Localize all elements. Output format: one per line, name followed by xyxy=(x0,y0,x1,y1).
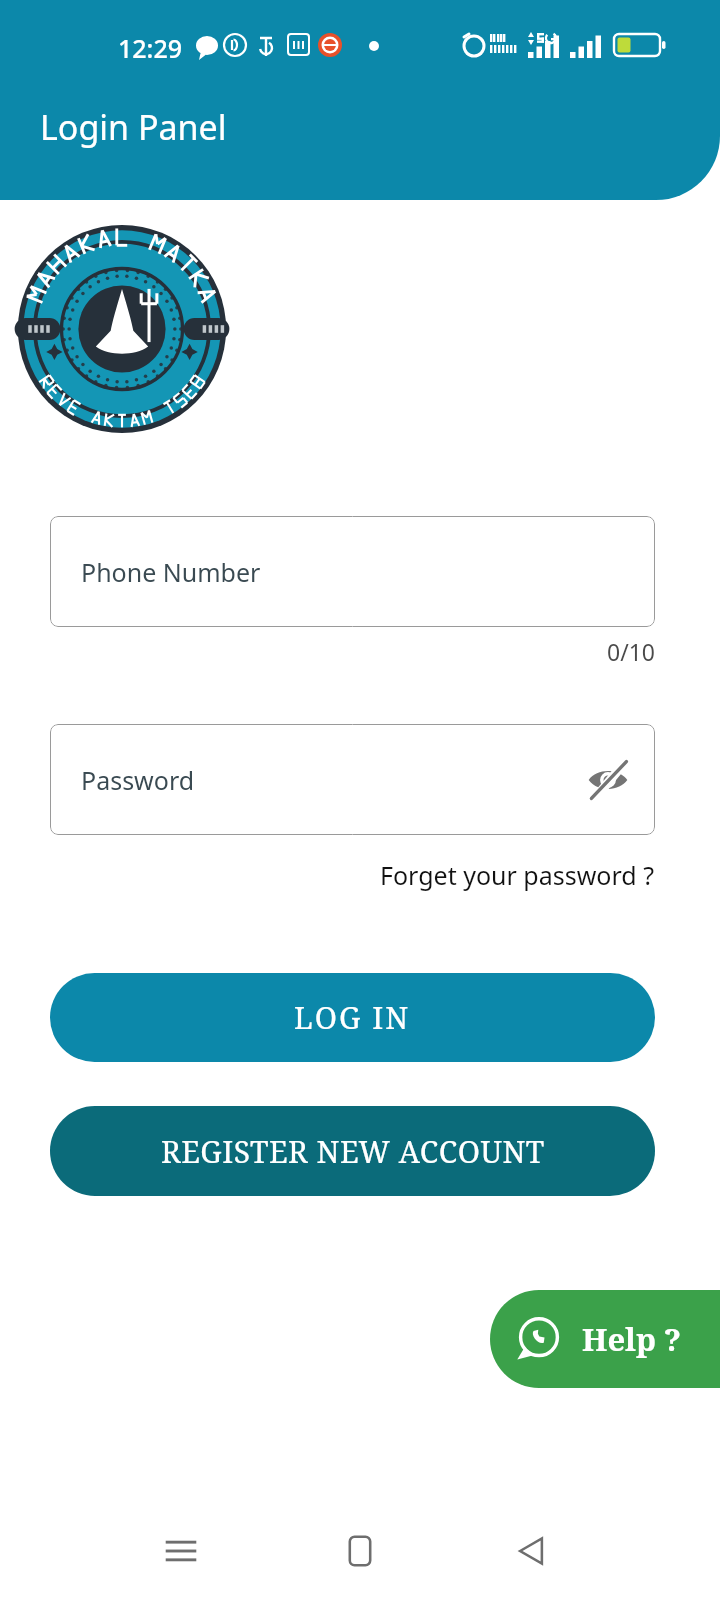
button[interactable]: LOG IN xyxy=(50,973,655,1062)
staticText: Forget your password ? xyxy=(380,858,655,892)
staticText: 0/10 xyxy=(455,636,655,667)
button[interactable]: Home xyxy=(329,1520,391,1582)
button[interactable]: Password xyxy=(50,724,655,835)
staticText: Password xyxy=(81,763,195,797)
button[interactable]: Back xyxy=(500,1520,562,1582)
button[interactable]: Help ? xyxy=(490,1290,720,1388)
staticText: Help ? xyxy=(582,1318,682,1360)
staticText: Login Panel xyxy=(40,104,227,150)
button[interactable]: Show password xyxy=(579,751,637,809)
button[interactable]: Recent apps xyxy=(150,1520,212,1582)
button[interactable]: Forget your password ? xyxy=(330,852,655,898)
staticText: REGISTER NEW ACCOUNT xyxy=(161,1131,545,1172)
staticText: Phone Number xyxy=(81,555,261,589)
button[interactable]: Phone Number xyxy=(50,516,655,627)
button[interactable]: REGISTER NEW ACCOUNT xyxy=(50,1106,655,1196)
staticText: LOG IN xyxy=(294,997,411,1038)
staticText: 12:29 xyxy=(118,31,183,65)
